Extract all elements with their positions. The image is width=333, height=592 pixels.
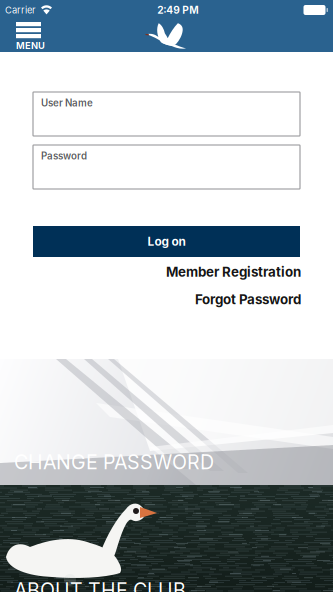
button[interactable]: Member Registration	[32, 260, 301, 284]
staticText: Password	[41, 150, 87, 162]
button[interactable]: ABOUT THE CLUB	[0, 485, 333, 592]
staticText: ABOUT THE CLUB	[14, 578, 186, 592]
staticText: User Name	[41, 97, 93, 109]
button[interactable]: Log on	[33, 226, 300, 257]
staticText: 2:49 PM	[157, 4, 198, 16]
staticText: Log on	[147, 234, 185, 249]
button[interactable]: Menu	[0, 20, 45, 52]
button[interactable]: CHANGE PASSWORD	[0, 359, 333, 485]
staticText: Forgot Password	[195, 291, 301, 307]
button[interactable]: Forgot Password	[32, 284, 301, 315]
staticText: MENU	[16, 40, 45, 51]
staticText: Member Registration	[166, 264, 301, 280]
staticText: Carrier	[5, 4, 36, 16]
staticText: CHANGE PASSWORD	[14, 450, 214, 474]
